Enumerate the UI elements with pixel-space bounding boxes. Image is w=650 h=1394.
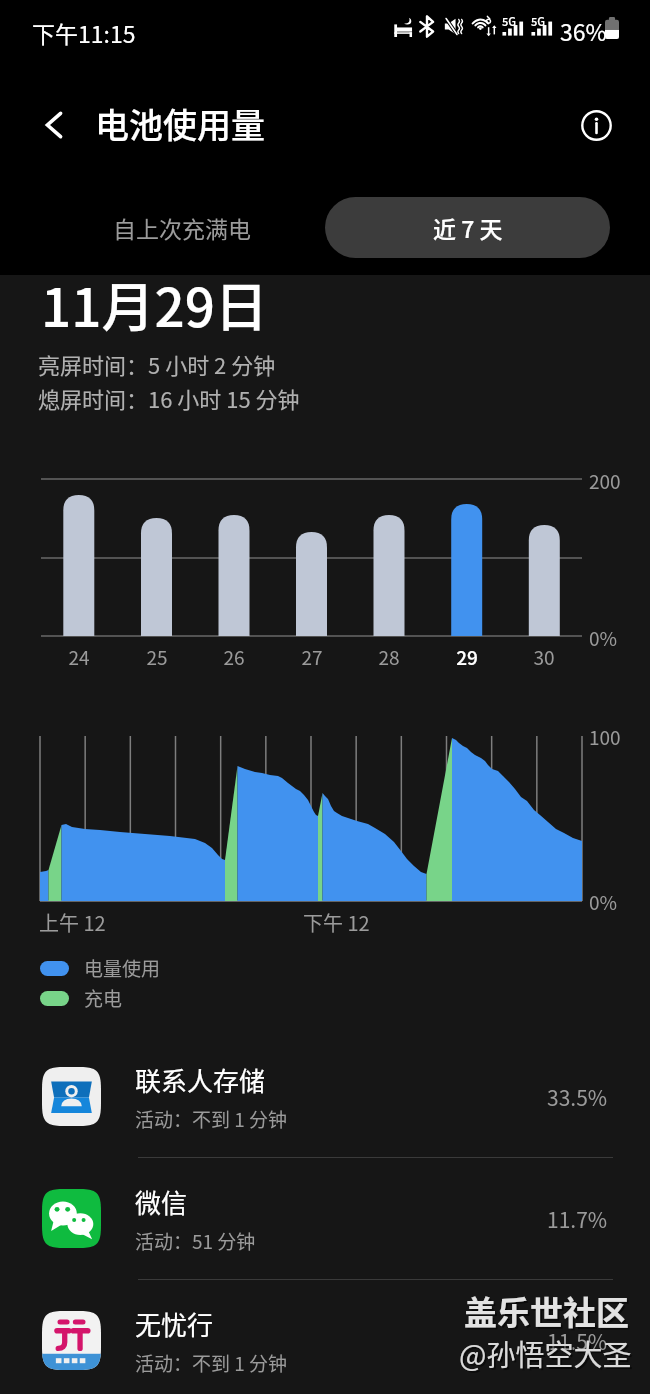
staticText: 活动：不到 1 分钟 bbox=[135, 1349, 288, 1377]
staticText: 100 bbox=[589, 723, 621, 751]
staticText: 30 bbox=[533, 643, 555, 671]
button[interactable]: 联系人存储 bbox=[0, 1036, 650, 1157]
staticText: 11.7% bbox=[547, 1204, 608, 1234]
staticText: 0% bbox=[589, 624, 618, 652]
staticText: 无忧行 bbox=[135, 1305, 214, 1343]
staticText: 自上次充满电 bbox=[113, 211, 251, 244]
button[interactable]: 无忧行 bbox=[0, 1280, 650, 1394]
staticText: 5G bbox=[531, 13, 545, 29]
staticText: 下午11:15 bbox=[32, 16, 136, 49]
staticText: 5G bbox=[502, 13, 516, 29]
staticText: 盖乐世社区 bbox=[466, 1289, 631, 1337]
staticText: 24 bbox=[68, 643, 90, 671]
staticText: 电量使用 bbox=[84, 954, 161, 982]
staticText: 联系人存储 bbox=[135, 1061, 266, 1099]
staticText: 28 bbox=[378, 643, 400, 671]
staticText: 盖乐世社区 bbox=[464, 1287, 629, 1335]
button[interactable]: 微信 bbox=[0, 1158, 650, 1279]
staticText: 活动：51 分钟 bbox=[135, 1227, 256, 1255]
staticText: 36% bbox=[560, 14, 607, 47]
staticText: 电池使用量 bbox=[95, 99, 265, 148]
staticText: 充电 bbox=[84, 984, 123, 1012]
staticText: 11月29日 bbox=[41, 266, 268, 343]
staticText: 亮屏时间：5 小时 2 分钟 bbox=[38, 348, 276, 380]
staticText: @孙悟空大圣 bbox=[461, 1334, 634, 1376]
staticText: 微信 bbox=[135, 1183, 188, 1221]
staticText: 0% bbox=[589, 888, 618, 916]
button[interactable]: Back bbox=[26, 97, 82, 153]
staticText: 上午 12 bbox=[39, 908, 106, 937]
staticText: 活动：不到 1 分钟 bbox=[135, 1105, 288, 1133]
staticText: 29 bbox=[456, 643, 478, 671]
button[interactable]: Information bbox=[570, 99, 622, 151]
staticText: 33.5% bbox=[547, 1082, 608, 1112]
button[interactable]: 近 7 天 bbox=[325, 197, 610, 258]
staticText: 熄屏时间：16 小时 15 分钟 bbox=[38, 382, 300, 414]
staticText: 近 7 天 bbox=[433, 211, 503, 244]
staticText: @孙悟空大圣 bbox=[459, 1332, 632, 1374]
staticText: 11.5% bbox=[547, 1326, 608, 1356]
staticText: 下午 12 bbox=[303, 908, 370, 937]
staticText: 27 bbox=[301, 643, 323, 671]
button[interactable]: 自上次充满电 bbox=[42, 197, 322, 258]
staticText: 26 bbox=[223, 643, 245, 671]
staticText: 200 bbox=[589, 467, 621, 495]
staticText: 25 bbox=[146, 643, 168, 671]
